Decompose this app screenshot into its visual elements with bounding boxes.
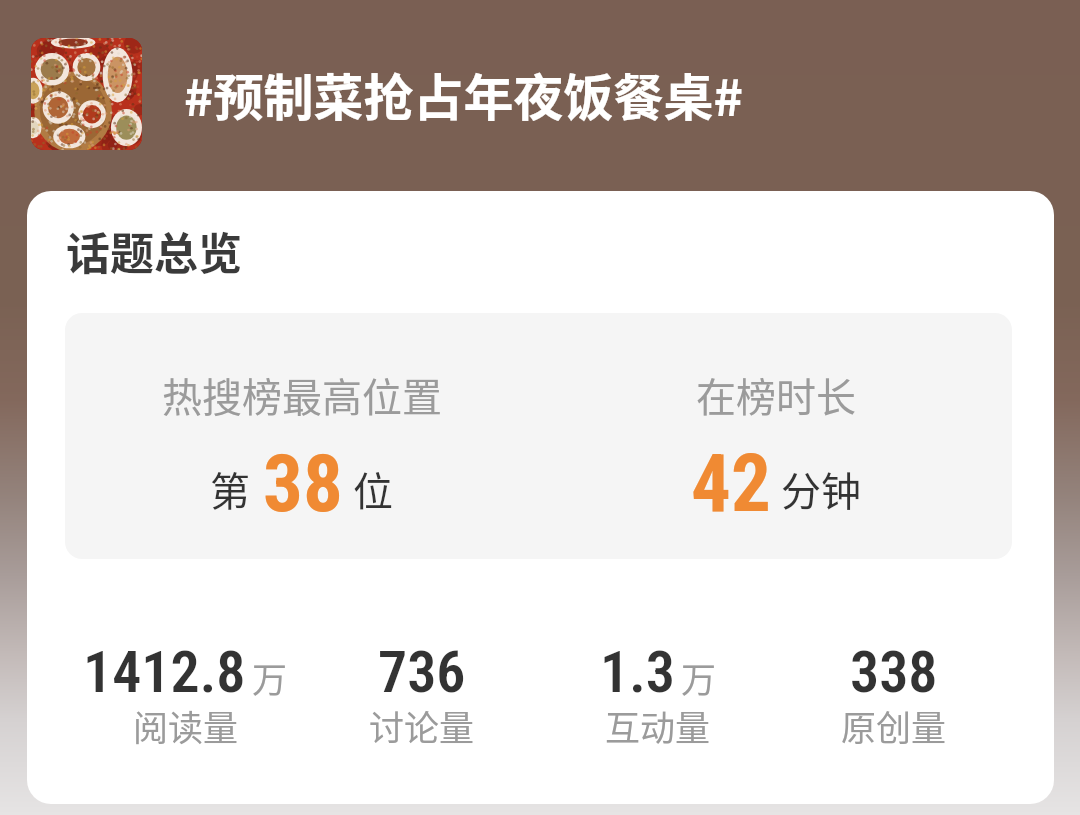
button[interactable]: 在榜时长	[539, 313, 1012, 559]
staticText: 第	[210, 460, 250, 518]
staticText: 万	[252, 652, 288, 703]
staticText: 互动量	[605, 700, 711, 751]
button[interactable]: 1412.8	[67, 638, 304, 757]
staticText: 热搜榜最高位置	[162, 366, 442, 424]
staticText: 分钟	[781, 460, 861, 518]
staticText: 原创量	[841, 700, 947, 751]
button[interactable]: 1.3	[540, 638, 776, 757]
staticText: 在榜时长	[696, 366, 856, 424]
button[interactable]: 热搜榜最高位置	[65, 313, 538, 559]
staticText: 1412.8	[83, 638, 246, 706]
staticText: 38	[263, 438, 343, 531]
staticText: 万	[681, 652, 717, 703]
button[interactable]: 338	[776, 638, 1012, 757]
staticText: 话题总览	[66, 219, 242, 283]
staticText: 1.3	[600, 638, 675, 706]
staticText: #预制菜抢占年夜饭餐桌#	[184, 58, 743, 130]
staticText: 736	[378, 638, 466, 706]
staticText: 338	[850, 638, 938, 706]
button[interactable]: 736	[304, 638, 540, 757]
staticText: 阅读量	[133, 700, 239, 751]
staticText: 讨论量	[369, 700, 475, 751]
staticText: 位	[353, 460, 393, 518]
button[interactable]: #预制菜抢占年夜饭餐桌#	[184, 58, 743, 130]
button[interactable]: Topic cover photo	[31, 38, 142, 150]
staticText: 42	[691, 438, 771, 531]
button[interactable]: 话题总览	[66, 219, 242, 283]
